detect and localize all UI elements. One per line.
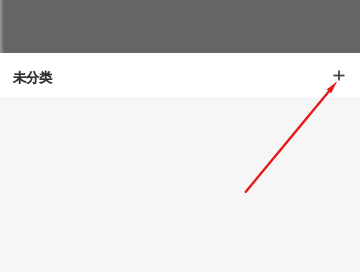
button[interactable]: 未分类 — [13, 69, 52, 85]
staticText: 未分类 — [13, 69, 52, 85]
button[interactable]: Add — [320, 55, 360, 95]
